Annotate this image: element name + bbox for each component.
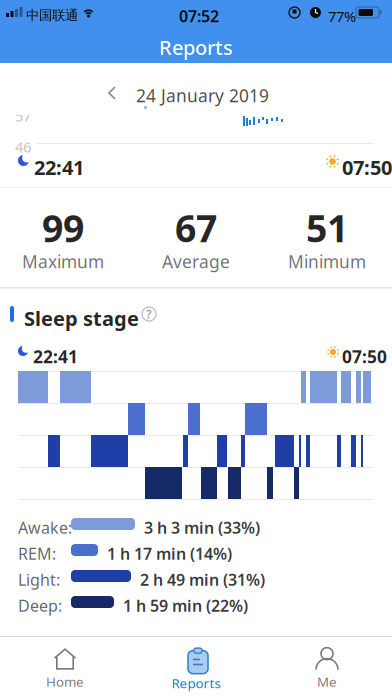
- staticText: Home: [46, 673, 84, 690]
- staticText: 77%: [328, 6, 356, 26]
- staticText: 1 h 17 min (14%): [107, 543, 232, 564]
- staticText: 1 h 59 min (22%): [123, 595, 248, 616]
- staticText: Average: [162, 250, 230, 273]
- staticText: 51: [306, 203, 348, 253]
- staticText: Sleep stage: [24, 305, 139, 332]
- staticText: 24 January 2019: [136, 84, 269, 107]
- staticText: 57: [15, 106, 31, 125]
- staticText: 2 h 49 min (31%): [140, 569, 265, 590]
- staticText: Maximum: [22, 250, 104, 273]
- staticText: Reports: [159, 34, 233, 61]
- staticText: Light:: [18, 569, 60, 590]
- button[interactable]: Reports: [151, 643, 241, 695]
- staticText: 07:50: [342, 154, 392, 181]
- button[interactable]: Me: [282, 643, 372, 695]
- button[interactable]: Home: [20, 643, 110, 695]
- staticText: Awake:: [18, 517, 72, 538]
- button[interactable]: About sleep stages: [142, 307, 156, 321]
- staticText: 67: [175, 203, 217, 253]
- staticText: 3 h 3 min (33%): [144, 517, 260, 538]
- staticText: Me: [317, 673, 337, 690]
- button[interactable]: 24 January 2019: [136, 84, 269, 107]
- staticText: 99: [42, 203, 84, 253]
- staticText: 46: [15, 137, 31, 156]
- staticText: 22:41: [33, 345, 78, 368]
- staticText: REM:: [18, 543, 56, 564]
- staticText: 07:50: [342, 345, 387, 368]
- staticText: Reports: [171, 674, 220, 692]
- staticText: 中国联通: [26, 7, 78, 23]
- staticText: Deep:: [18, 595, 62, 616]
- staticText: ?: [146, 306, 152, 322]
- button[interactable]: Previous day: [97, 78, 127, 108]
- staticText: 22:41: [34, 154, 84, 181]
- staticText: Minimum: [288, 250, 366, 273]
- staticText: 07:52: [179, 5, 219, 27]
